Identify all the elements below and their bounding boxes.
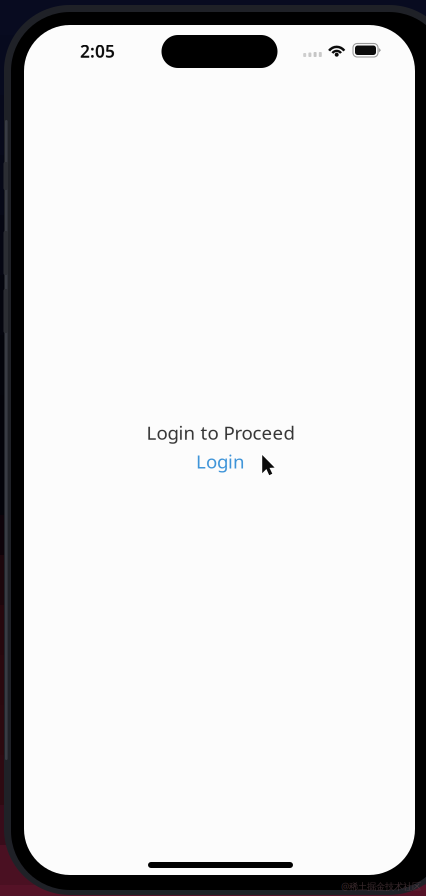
staticText: Login to Proceed — [146, 420, 294, 445]
staticText: Login — [196, 449, 245, 474]
staticText: 2:05 — [80, 39, 115, 62]
staticText: @稀土掘金技术社区 — [341, 880, 421, 892]
button[interactable]: Login — [196, 449, 245, 474]
